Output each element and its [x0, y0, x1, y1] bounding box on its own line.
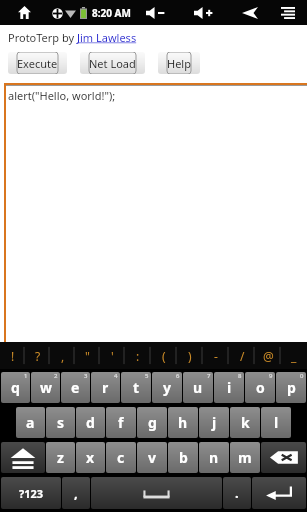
staticText: p: [287, 378, 296, 397]
button[interactable]: ?123: [1, 477, 61, 509]
button[interactable]: ): [177, 342, 203, 369]
button[interactable]: Enter: [252, 477, 306, 509]
staticText: Net Load: [89, 56, 136, 71]
staticText: m: [238, 448, 252, 467]
button[interactable]: n: [199, 442, 229, 473]
button[interactable]: b: [168, 442, 198, 473]
button[interactable]: i: [214, 372, 244, 403]
staticText: 5: [145, 372, 149, 380]
staticText: i: [227, 378, 232, 397]
staticText: j: [212, 413, 217, 432]
staticText: 3: [84, 372, 88, 380]
staticText: Execute: [17, 56, 58, 71]
button[interactable]: q: [1, 372, 30, 403]
staticText: u: [193, 378, 203, 397]
staticText: d: [86, 413, 95, 432]
staticText: q: [11, 378, 20, 397]
button[interactable]: :: [125, 342, 151, 369]
staticText: t: [133, 378, 140, 397]
staticText: ,: [61, 348, 65, 364]
staticText: 9: [269, 372, 273, 380]
staticText: 0: [300, 372, 304, 380]
button[interactable]: Shift: [1, 442, 45, 473]
staticText: s: [57, 413, 65, 432]
button[interactable]: d: [76, 407, 105, 438]
staticText: :: [136, 348, 140, 364]
button[interactable]: Net Load: [80, 52, 145, 74]
button[interactable]: e: [61, 372, 90, 403]
button[interactable]: l: [261, 407, 291, 438]
button[interactable]: alert("Hello, world!");: [8, 88, 307, 342]
staticText: 2: [54, 372, 58, 380]
staticText: Jim Lawless: [77, 30, 137, 45]
staticText: g: [148, 413, 157, 432]
staticText: @: [263, 348, 274, 364]
button[interactable]: ,: [62, 477, 90, 509]
button[interactable]: m: [230, 442, 260, 473]
button[interactable]: w: [31, 372, 60, 403]
button[interactable]: c: [106, 442, 136, 473]
button[interactable]: Help: [158, 52, 200, 74]
staticText: .: [235, 484, 239, 502]
button[interactable]: Execute: [8, 52, 67, 74]
staticText: r: [102, 378, 109, 397]
staticText: z: [57, 448, 64, 467]
button[interactable]: Space: [91, 477, 222, 509]
button[interactable]: .: [223, 477, 251, 509]
button[interactable]: p: [276, 372, 306, 403]
staticText: /: [240, 348, 245, 364]
staticText: h: [178, 413, 188, 432]
button[interactable]: ?: [25, 342, 50, 369]
staticText: a: [26, 413, 35, 432]
button[interactable]: _: [281, 342, 307, 369]
staticText: ?123: [19, 486, 44, 501]
button[interactable]: t: [121, 372, 151, 403]
button[interactable]: !: [0, 342, 25, 369]
button[interactable]: h: [168, 407, 198, 438]
button[interactable]: @: [255, 342, 281, 369]
staticText: v: [148, 448, 156, 467]
staticText: !: [11, 348, 15, 364]
button[interactable]: Menu: [275, 0, 301, 25]
staticText: ?: [35, 348, 41, 364]
button[interactable]: (: [151, 342, 177, 369]
button[interactable]: x: [76, 442, 105, 473]
button[interactable]: z: [46, 442, 75, 473]
staticText: 6: [176, 372, 180, 380]
button[interactable]: a: [16, 407, 45, 438]
staticText: y: [163, 378, 171, 397]
staticText: f: [118, 413, 124, 432]
button[interactable]: Jim Lawless: [77, 30, 137, 45]
button[interactable]: o: [245, 372, 275, 403]
button[interactable]: ": [75, 342, 100, 369]
staticText: x: [86, 448, 95, 467]
button[interactable]: ,: [50, 342, 75, 369]
button[interactable]: j: [199, 407, 229, 438]
staticText: 8:20 AM: [92, 6, 131, 20]
button[interactable]: Home: [12, 0, 37, 25]
staticText: (: [162, 348, 166, 364]
button[interactable]: s: [46, 407, 75, 438]
button[interactable]: Volume up: [191, 0, 217, 25]
button[interactable]: -: [203, 342, 229, 369]
staticText: n: [209, 448, 219, 467]
staticText: w: [40, 378, 52, 397]
staticText: e: [71, 378, 80, 397]
button[interactable]: g: [137, 407, 167, 438]
button[interactable]: Back: [237, 0, 263, 25]
button[interactable]: u: [183, 372, 213, 403]
button[interactable]: /: [229, 342, 255, 369]
staticText: 8: [238, 372, 242, 380]
button[interactable]: k: [230, 407, 260, 438]
button[interactable]: y: [152, 372, 182, 403]
button[interactable]: v: [137, 442, 167, 473]
staticText: ): [188, 348, 192, 364]
button[interactable]: f: [106, 407, 136, 438]
staticText: c: [117, 448, 125, 467]
button[interactable]: Backspace: [261, 442, 306, 473]
button[interactable]: Volume down: [143, 0, 169, 25]
button[interactable]: r: [91, 372, 120, 403]
button[interactable]: ': [100, 342, 125, 369]
staticText: 7: [207, 372, 211, 380]
staticText: b: [179, 448, 188, 467]
